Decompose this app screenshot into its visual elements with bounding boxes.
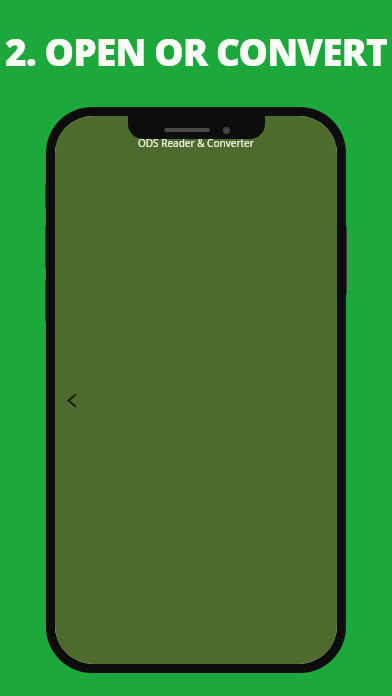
staticText: 2. OPEN OR CONVERT bbox=[5, 26, 387, 76]
staticText: ODS Reader & Converter bbox=[138, 136, 254, 150]
button[interactable]: Back bbox=[55, 383, 89, 417]
